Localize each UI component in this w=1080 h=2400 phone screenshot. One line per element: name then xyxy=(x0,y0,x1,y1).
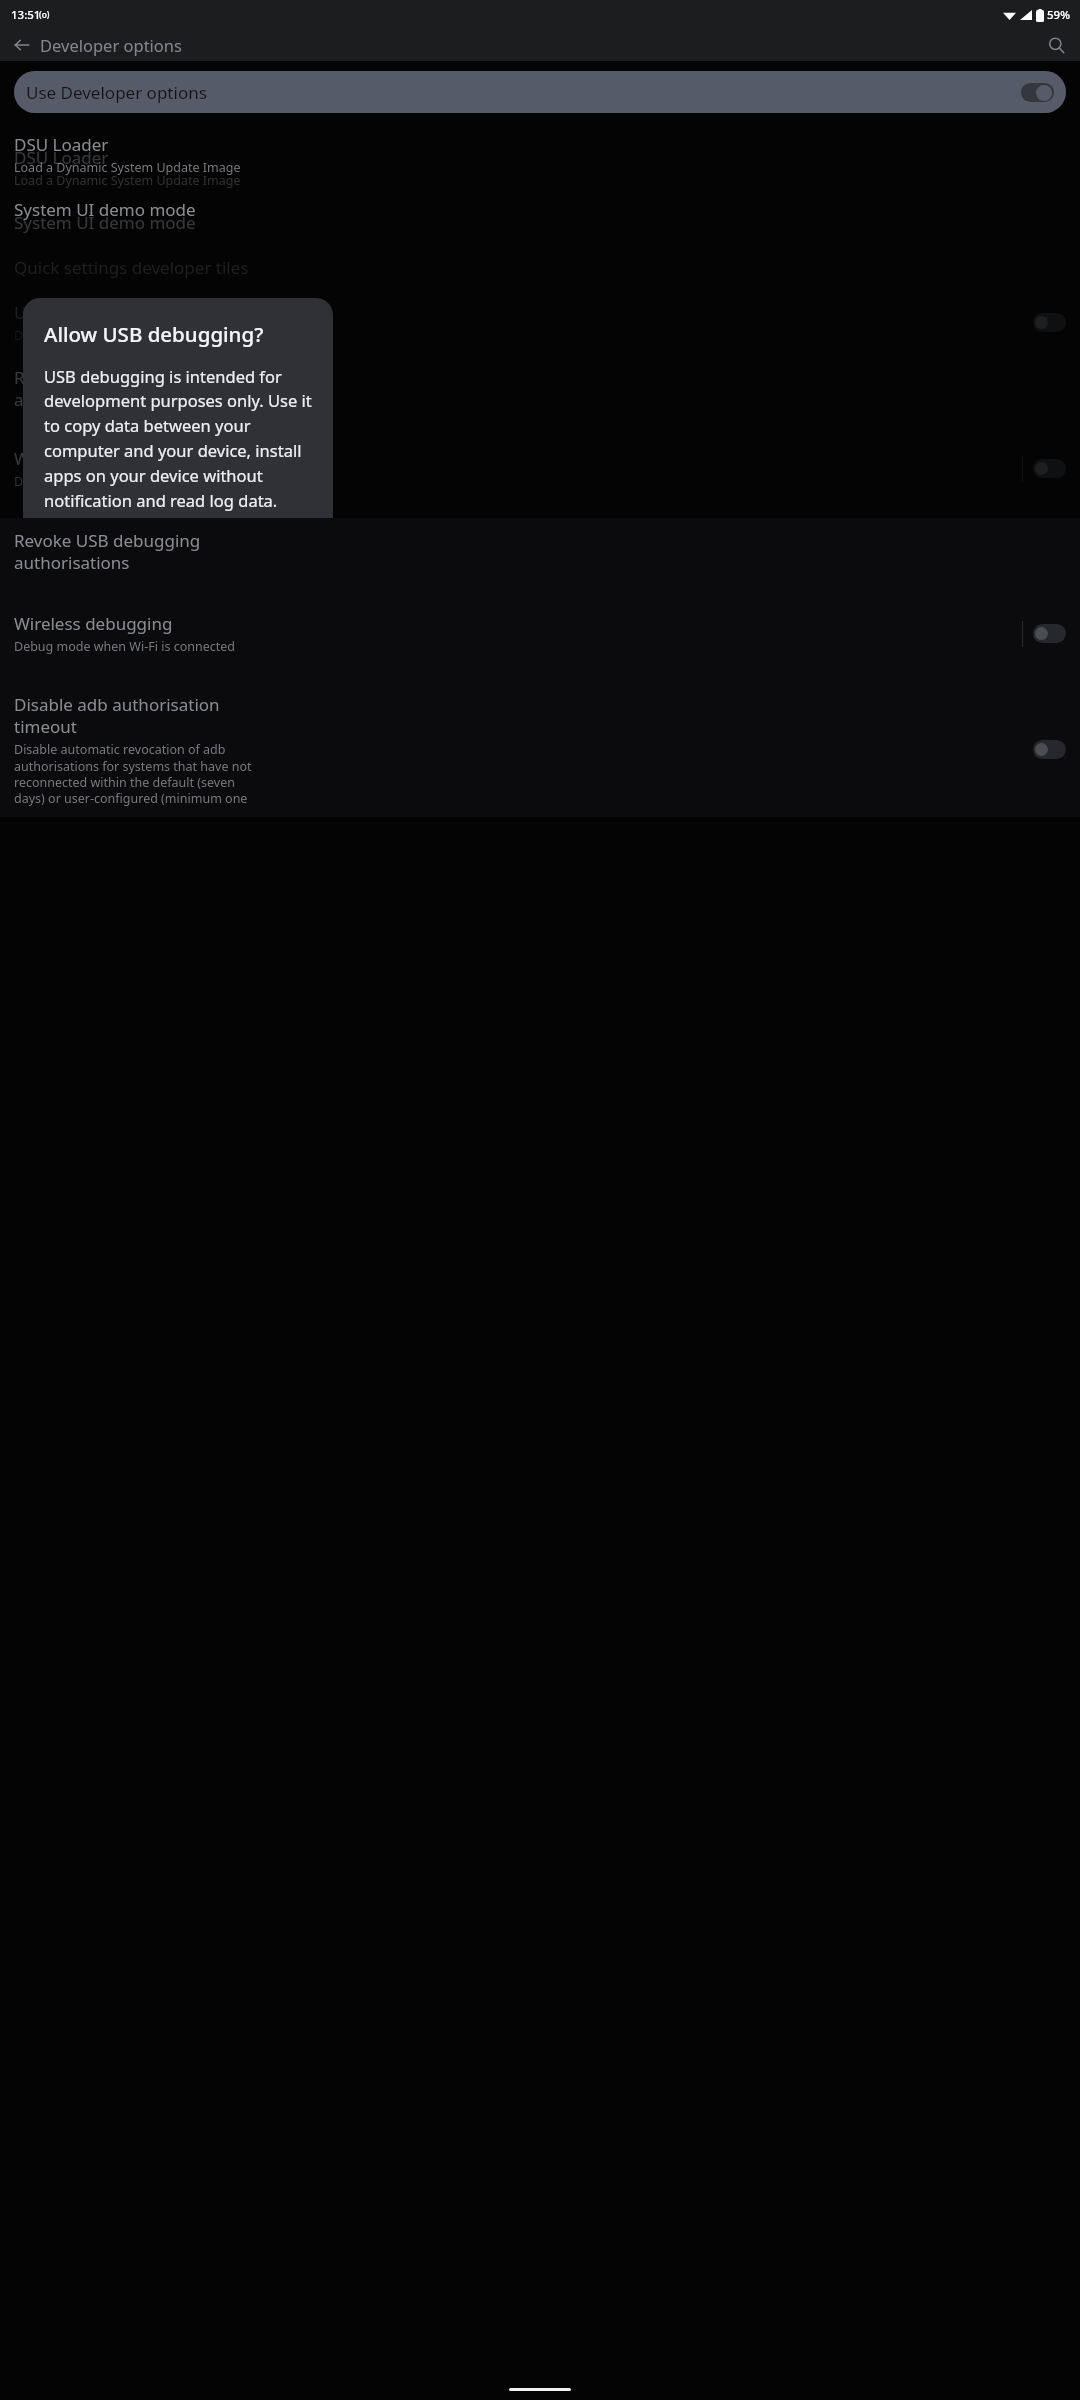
staticText: (o) xyxy=(39,9,50,21)
button[interactable]: System UI demo mode xyxy=(0,200,1080,245)
button[interactable]: Back xyxy=(4,29,40,61)
button[interactable]: Wireless debugging xyxy=(0,601,1080,666)
button[interactable]: Wireless debugging xyxy=(0,436,1080,501)
staticText: Revoke USB debugging authorisations xyxy=(14,366,201,411)
staticText: 59% xyxy=(1047,7,1070,23)
staticText: Wireless debugging xyxy=(14,612,173,635)
button[interactable]: USB debugging xyxy=(0,290,1080,355)
staticText: Disable automatic revocation of adb auth… xyxy=(14,741,252,806)
staticText: Disable automatic revocation of adb auth… xyxy=(14,574,252,639)
staticText: Cancel xyxy=(187,537,240,559)
staticText: Use Developer options xyxy=(26,81,1021,104)
staticText: USB debugging xyxy=(14,301,139,324)
staticText: Revoke USB debugging authorisations xyxy=(14,529,201,574)
staticText: Allow USB debugging? xyxy=(44,320,264,348)
button[interactable]: Use Developer options xyxy=(14,71,1066,113)
button[interactable]: Disable adb authorisation timeout xyxy=(0,515,1080,650)
staticText: USB debugging is intended for developmen… xyxy=(44,365,312,512)
button[interactable]: Revoke USB debugging authorisations xyxy=(0,518,1080,585)
button[interactable]: Cancel xyxy=(175,530,252,566)
button[interactable]: Search xyxy=(1038,29,1074,61)
button[interactable]: Toggle xyxy=(1033,624,1066,643)
button[interactable]: DSU Loader xyxy=(0,135,1080,200)
button[interactable]: Revoke USB debugging authorisations xyxy=(0,355,1080,422)
staticText: Quick settings developer tiles xyxy=(14,256,249,279)
staticText: Developer options xyxy=(40,34,182,56)
staticText: Disable adb authorisation timeout xyxy=(14,693,220,738)
staticText: Debug mode when USB is connected xyxy=(14,327,231,344)
button[interactable]: Search xyxy=(1038,29,1074,61)
staticText: System UI demo mode xyxy=(14,198,196,221)
staticText: Use Developer options xyxy=(26,81,1021,104)
staticText: System UI demo mode xyxy=(14,211,196,234)
button[interactable]: DSU Loader xyxy=(0,122,1080,187)
button[interactable]: Use Developer options xyxy=(14,71,1066,113)
staticText: (o) xyxy=(39,9,50,21)
button[interactable]: System UI demo mode xyxy=(0,187,1080,232)
button[interactable]: Back xyxy=(4,29,40,61)
staticText: Debug mode when Wi-Fi is connected xyxy=(14,473,235,490)
staticText: Debug mode when Wi-Fi is connected xyxy=(14,638,235,655)
staticText: Wireless debugging xyxy=(14,447,173,470)
staticText: 13:51 xyxy=(11,7,41,23)
staticText: 13:51 xyxy=(11,7,41,23)
staticText: Disable adb authorisation timeout xyxy=(14,526,220,571)
staticText: DSU Loader xyxy=(14,133,109,156)
staticText: DSU Loader xyxy=(14,146,109,169)
button[interactable]: Toggle xyxy=(1033,459,1066,478)
button[interactable]: Disable adb authorisation timeout xyxy=(0,682,1080,817)
staticText: 59% xyxy=(1047,7,1070,23)
staticText: Developer options xyxy=(40,34,182,56)
button[interactable]: Toggle xyxy=(1033,740,1066,759)
button[interactable]: Toggle xyxy=(1033,313,1066,332)
staticText: Load a Dynamic System Update Image xyxy=(14,159,241,176)
staticText: Load a Dynamic System Update Image xyxy=(14,172,241,189)
